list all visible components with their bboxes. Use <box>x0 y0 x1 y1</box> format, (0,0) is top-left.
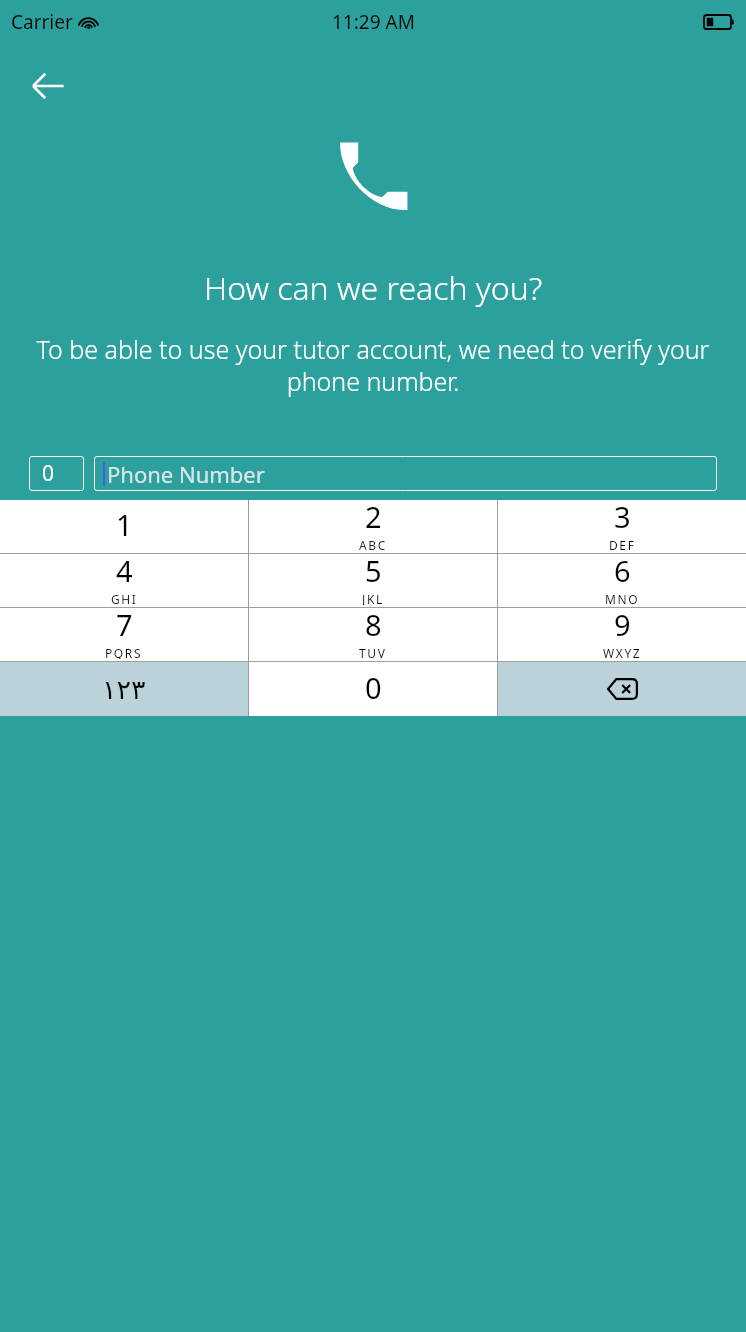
staticText: ABC <box>359 537 387 551</box>
staticText: WXYZ <box>603 645 642 659</box>
button[interactable]: 0 <box>29 456 84 491</box>
staticText: PQRS <box>105 645 143 659</box>
staticText: 6 <box>614 551 631 590</box>
staticText: 1 <box>116 505 133 544</box>
staticText: 2 <box>365 497 382 536</box>
staticText: 9 <box>614 605 631 644</box>
staticText: 7 <box>116 605 133 644</box>
button[interactable]: 7 <box>0 608 248 662</box>
button[interactable]: Back <box>14 52 82 120</box>
button[interactable]: 1 <box>0 500 248 554</box>
button[interactable]: 5 <box>249 554 497 608</box>
button[interactable]: 0 <box>249 662 497 716</box>
staticText: GHI <box>111 591 138 605</box>
staticText: To be able to use your tutor account, we… <box>30 332 716 398</box>
button[interactable]: Backspace <box>498 662 746 716</box>
staticText: 8 <box>365 605 382 644</box>
button[interactable]: ١٢٣ <box>0 662 248 716</box>
staticText: Phone Number <box>107 459 265 489</box>
button[interactable]: 2 <box>249 500 497 554</box>
staticText: ١٢٣ <box>102 674 146 705</box>
staticText: 4 <box>116 551 133 590</box>
staticText: Carrier <box>11 9 73 35</box>
staticText: How can we reach you? <box>204 266 543 310</box>
staticText: JKL <box>362 591 384 605</box>
staticText: TUV <box>359 645 387 659</box>
button[interactable]: 9 <box>498 608 746 662</box>
staticText: 0 <box>365 668 382 707</box>
staticText: 3 <box>614 497 631 536</box>
button[interactable]: 3 <box>498 500 746 554</box>
staticText: 11:29 AM <box>332 9 415 35</box>
button[interactable]: 8 <box>249 608 497 662</box>
staticText: 5 <box>365 551 382 590</box>
staticText: MNO <box>605 591 640 605</box>
button[interactable]: 6 <box>498 554 746 608</box>
button[interactable]: 4 <box>0 554 248 608</box>
staticText: DEF <box>609 537 636 551</box>
staticText: 0 <box>42 459 55 488</box>
button[interactable]: Phone Number <box>94 456 717 491</box>
